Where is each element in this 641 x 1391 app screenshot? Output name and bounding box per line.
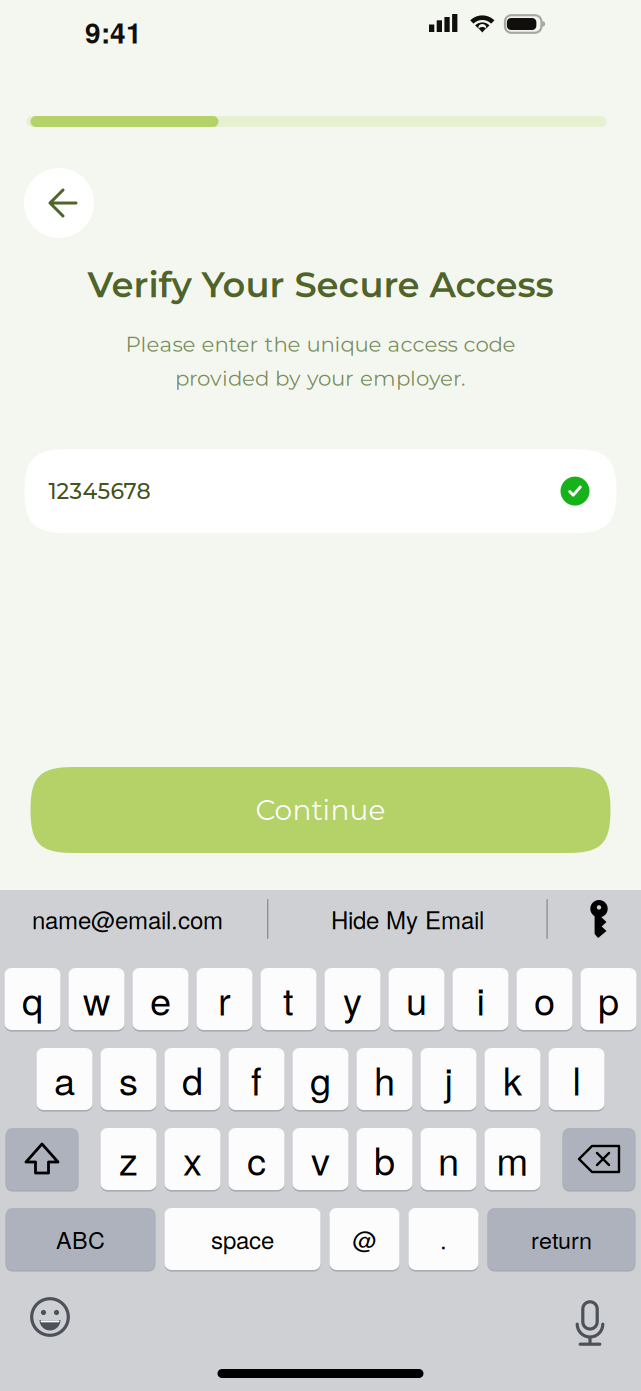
- button[interactable]: f: [228, 1048, 284, 1110]
- staticText: provided by your employer.: [175, 365, 466, 391]
- staticText: space: [211, 1222, 274, 1256]
- staticText: Verify Your Secure Access: [87, 263, 553, 306]
- staticText: Please enter the unique access code: [125, 331, 515, 357]
- button[interactable]: t: [260, 968, 316, 1030]
- button[interactable]: s: [100, 1048, 156, 1110]
- staticText: r: [218, 972, 231, 1026]
- button[interactable]: c: [228, 1128, 284, 1190]
- staticText: a: [54, 1052, 75, 1106]
- button[interactable]: Back: [24, 168, 94, 238]
- button[interactable]: Shift: [5, 1128, 78, 1190]
- staticText: f: [251, 1052, 262, 1106]
- button[interactable]: d: [164, 1048, 220, 1110]
- button[interactable]: Continue: [30, 767, 610, 853]
- button[interactable]: n: [420, 1128, 476, 1190]
- staticText: n: [438, 1132, 459, 1186]
- button[interactable]: ABC: [5, 1208, 155, 1270]
- staticText: name@email.com: [32, 902, 223, 936]
- staticText: m: [496, 1132, 528, 1186]
- staticText: i: [476, 972, 484, 1026]
- button[interactable]: Hide My Email: [268, 891, 546, 947]
- button[interactable]: a: [36, 1048, 92, 1110]
- staticText: l: [572, 1052, 580, 1106]
- button[interactable]: .: [408, 1208, 478, 1270]
- staticText: j: [444, 1052, 452, 1106]
- button[interactable]: e: [132, 968, 188, 1030]
- button[interactable]: Passwords: [572, 891, 628, 947]
- button[interactable]: r: [196, 968, 252, 1030]
- button[interactable]: return: [487, 1208, 635, 1270]
- staticText: h: [374, 1052, 395, 1106]
- button[interactable]: l: [548, 1048, 604, 1110]
- button[interactable]: o: [516, 968, 572, 1030]
- staticText: Continue: [255, 793, 385, 827]
- staticText: c: [247, 1132, 266, 1186]
- button[interactable]: q: [4, 968, 60, 1030]
- button[interactable]: Emoji: [27, 1294, 73, 1340]
- staticText: q: [22, 972, 43, 1026]
- button[interactable]: m: [484, 1128, 540, 1190]
- button[interactable]: j: [420, 1048, 476, 1110]
- staticText: e: [150, 972, 171, 1026]
- staticText: return: [531, 1222, 592, 1256]
- staticText: @: [352, 1222, 376, 1256]
- staticText: ABC: [56, 1222, 105, 1256]
- button[interactable]: u: [388, 968, 444, 1030]
- staticText: o: [534, 972, 555, 1026]
- staticText: d: [182, 1052, 203, 1106]
- button[interactable]: Dictation: [584, 1294, 614, 1340]
- button[interactable]: g: [292, 1048, 348, 1110]
- staticText: u: [406, 972, 427, 1026]
- button[interactable]: space: [164, 1208, 320, 1270]
- button[interactable]: p: [580, 968, 636, 1030]
- button[interactable]: @: [329, 1208, 399, 1270]
- staticText: Hide My Email: [331, 902, 484, 936]
- staticText: .: [440, 1222, 447, 1256]
- staticText: 9:41: [85, 12, 142, 52]
- button[interactable]: k: [484, 1048, 540, 1110]
- button[interactable]: b: [356, 1128, 412, 1190]
- staticText: b: [374, 1132, 395, 1186]
- button[interactable]: w: [68, 968, 124, 1030]
- staticText: v: [311, 1132, 330, 1186]
- staticText: s: [119, 1052, 138, 1106]
- button[interactable]: v: [292, 1128, 348, 1190]
- button[interactable]: x: [164, 1128, 220, 1190]
- button[interactable]: name@email.com: [0, 891, 255, 947]
- staticText: y: [343, 972, 362, 1026]
- staticText: t: [283, 972, 294, 1026]
- staticText: g: [310, 1052, 331, 1106]
- staticText: 12345678: [48, 478, 150, 504]
- button[interactable]: y: [324, 968, 380, 1030]
- staticText: z: [119, 1132, 138, 1186]
- staticText: x: [183, 1132, 202, 1186]
- button[interactable]: z: [100, 1128, 156, 1190]
- staticText: p: [598, 972, 619, 1026]
- staticText: w: [83, 972, 110, 1026]
- button[interactable]: i: [452, 968, 508, 1030]
- staticText: k: [503, 1052, 522, 1106]
- button[interactable]: h: [356, 1048, 412, 1110]
- button[interactable]: Delete: [562, 1128, 635, 1190]
